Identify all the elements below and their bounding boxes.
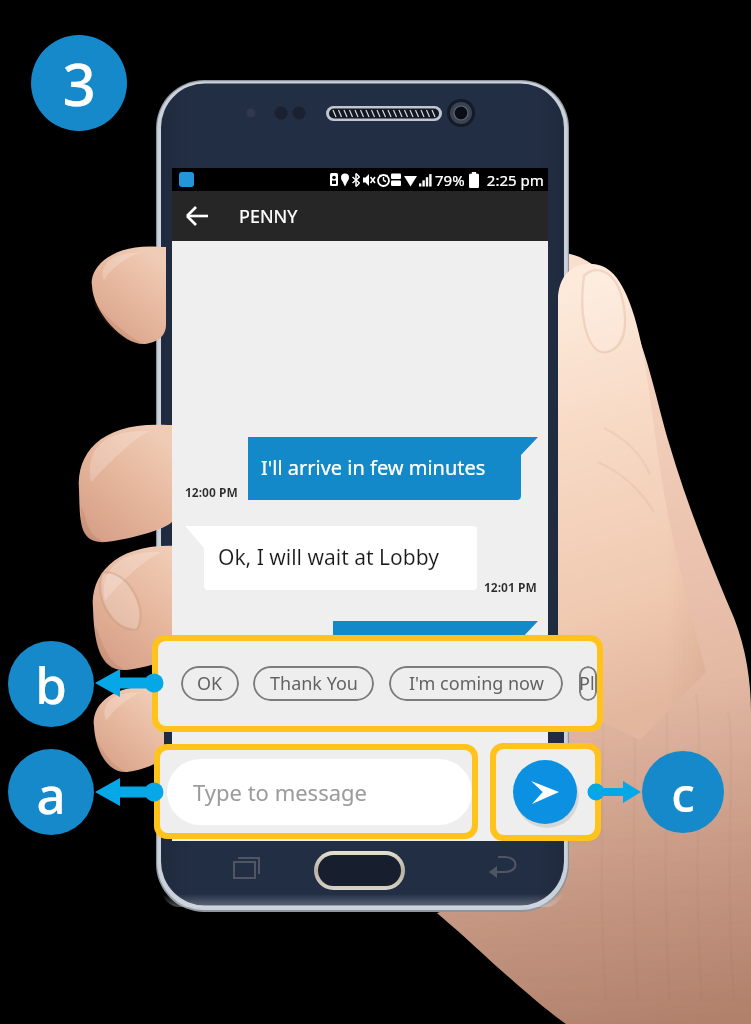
button[interactable]: OK (158, 641, 597, 726)
button[interactable]: Back (172, 191, 222, 241)
staticText: 12:00 PM (185, 484, 238, 500)
button[interactable]: c (642, 751, 724, 833)
staticText: b (35, 649, 67, 718)
button[interactable]: Send (513, 760, 577, 824)
button[interactable]: Type to message (160, 750, 472, 833)
staticText: 2:25 pm (479, 170, 544, 190)
button[interactable]: a (8, 749, 94, 835)
staticText: Thank You (270, 671, 358, 696)
staticText: Type to message (193, 777, 367, 807)
button[interactable]: 3 (31, 35, 127, 131)
button[interactable]: Please (579, 666, 597, 701)
staticText: Please (579, 671, 597, 696)
staticText: Ok, I will wait at Lobby (218, 543, 439, 572)
staticText: c (671, 761, 695, 826)
staticText: 79% (435, 170, 465, 190)
button[interactable]: b (8, 641, 94, 727)
button[interactable]: Thank You (253, 666, 374, 701)
button[interactable]: Back (172, 191, 548, 241)
staticText: a (36, 759, 66, 828)
button[interactable]: I'm coming now (389, 666, 563, 701)
staticText: OK (197, 671, 223, 696)
staticText: 3 (62, 44, 96, 123)
staticText: PENNY (239, 204, 298, 229)
staticText: I'll arrive in few minutes (261, 454, 486, 481)
button[interactable]: OK (181, 666, 239, 701)
staticText: I'm coming now (409, 671, 544, 696)
staticText: 12:01 PM (484, 579, 537, 595)
